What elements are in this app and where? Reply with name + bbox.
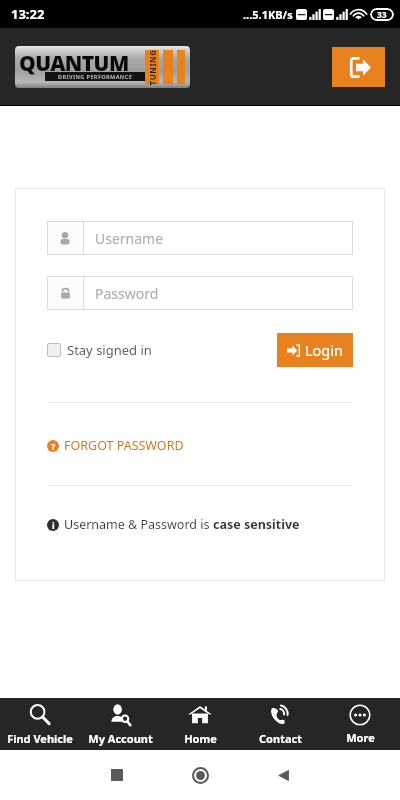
staticText: i bbox=[52, 519, 55, 531]
button[interactable]: ? bbox=[47, 437, 184, 454]
staticText: Find Vehicle bbox=[7, 731, 73, 746]
staticText: 33 bbox=[377, 9, 387, 21]
staticText: QUANTUM bbox=[19, 49, 129, 78]
staticText: case sensitive bbox=[213, 516, 300, 533]
button[interactable]: Home bbox=[160, 698, 240, 750]
button[interactable]: Find Vehicle bbox=[0, 698, 80, 750]
staticText: Contact bbox=[259, 731, 302, 746]
staticText: DRIVING PERFORMANCE bbox=[58, 73, 133, 80]
staticText: 13:22 bbox=[11, 5, 45, 23]
button[interactable]: Password bbox=[47, 276, 353, 310]
button[interactable]: Username bbox=[47, 221, 353, 255]
staticText: TUNING bbox=[146, 47, 157, 87]
button[interactable]: Logout bbox=[332, 47, 385, 87]
button[interactable]: Back bbox=[266, 758, 300, 792]
button[interactable]: Stay signed in bbox=[47, 341, 152, 359]
staticText: ...5.1KB/s bbox=[243, 7, 293, 22]
button[interactable]: Recents bbox=[100, 758, 134, 792]
staticText: Home bbox=[184, 731, 217, 746]
staticText: Username & Password is bbox=[64, 516, 213, 533]
button[interactable]: Contact bbox=[240, 698, 320, 750]
staticText: More bbox=[346, 730, 375, 745]
button[interactable]: More bbox=[320, 698, 400, 750]
staticText: Stay signed in bbox=[67, 341, 152, 359]
button[interactable]: My Account bbox=[80, 698, 160, 750]
staticText: My Account bbox=[88, 731, 153, 746]
staticText: FORGOT PASSWORD bbox=[64, 437, 184, 454]
button[interactable]: Login bbox=[277, 333, 353, 367]
staticText: Username bbox=[95, 229, 164, 248]
staticText: Password bbox=[95, 284, 159, 303]
button[interactable]: Home bbox=[183, 758, 217, 792]
staticText: ? bbox=[51, 440, 56, 452]
staticText: Login bbox=[305, 340, 343, 360]
